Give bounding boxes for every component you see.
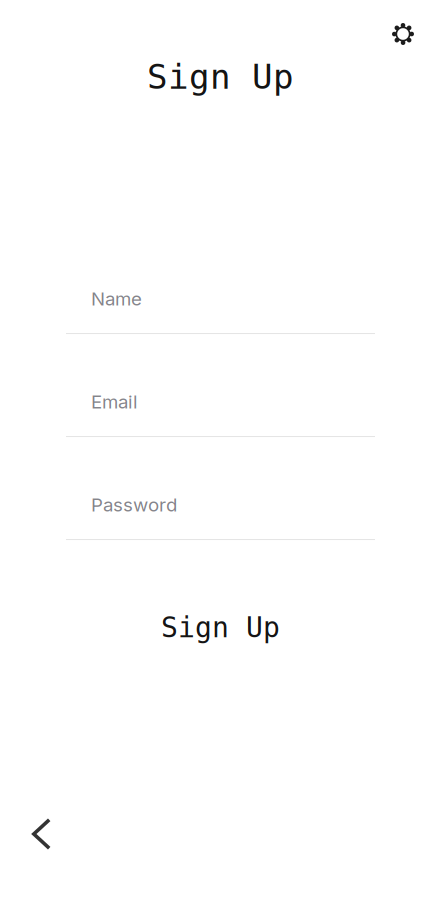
button[interactable]: Name [66, 287, 375, 334]
staticText: Sign Up [147, 57, 294, 97]
button[interactable]: Sign Up [0, 599, 441, 656]
staticText: Password [91, 493, 177, 516]
button[interactable]: Password [66, 493, 375, 540]
button[interactable]: Email [66, 390, 375, 437]
staticText: Sign Up [161, 611, 280, 644]
staticText: Name [91, 287, 142, 310]
staticText: Email [91, 390, 138, 413]
button[interactable]: Back [20, 806, 63, 862]
button[interactable]: Settings [382, 13, 424, 55]
